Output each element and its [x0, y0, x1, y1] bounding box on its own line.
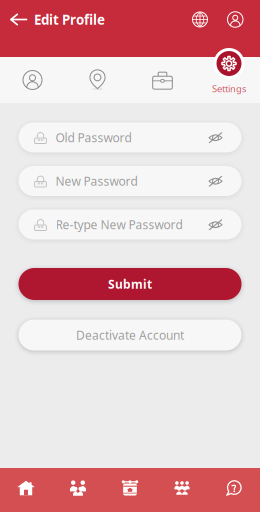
button[interactable]: Address [65, 57, 130, 103]
button[interactable]: Home [0, 466, 52, 510]
button[interactable]: Re-type New Password [18, 209, 241, 239]
button[interactable]: Employment [130, 57, 195, 103]
button[interactable]: Family [52, 466, 104, 510]
button[interactable]: Deactivate Account [18, 319, 241, 350]
button[interactable]: Submit [18, 268, 241, 300]
button[interactable]: Community [156, 466, 208, 510]
button[interactable]: Language [184, 4, 215, 35]
staticText: Re-type New Password [55, 216, 182, 232]
button[interactable]: Settings [195, 57, 260, 103]
button[interactable]: Personal info [0, 57, 65, 103]
staticText: New Password [55, 173, 137, 189]
staticText: Submit [108, 276, 152, 292]
button[interactable]: Back [0, 4, 34, 34]
button[interactable]: Old Password [18, 122, 241, 152]
button[interactable]: Account [219, 4, 251, 35]
staticText: Deactivate Account [76, 327, 184, 343]
staticText: Settings [212, 82, 246, 95]
button[interactable]: Help [208, 466, 260, 510]
staticText: Old Password [55, 129, 131, 145]
staticText: Edit Profile [34, 11, 105, 28]
button[interactable]: New Password [18, 166, 241, 196]
button[interactable]: Calendar [104, 466, 156, 510]
